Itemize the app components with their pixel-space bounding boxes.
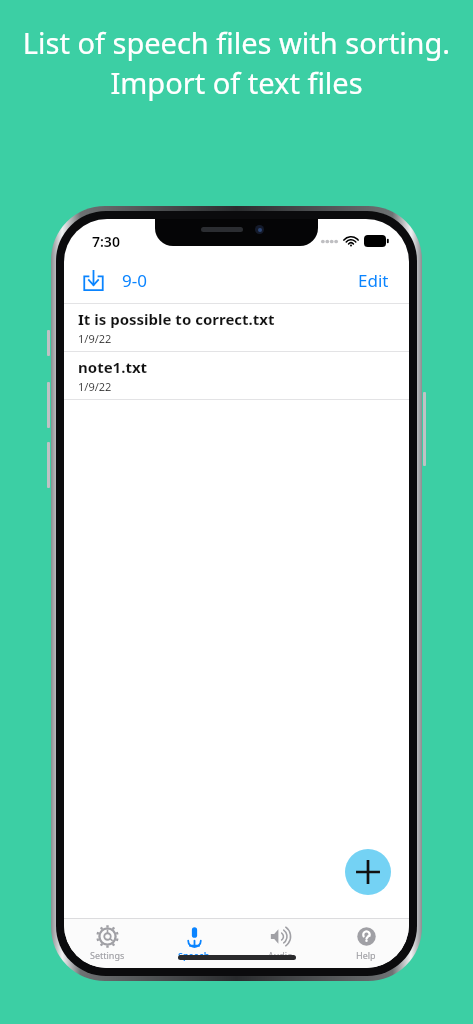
button[interactable]: 9-0 xyxy=(122,269,147,292)
staticText: Settings xyxy=(90,949,125,961)
button[interactable]: Audio xyxy=(237,919,323,968)
staticText: 1/9/22 xyxy=(78,331,112,346)
button[interactable]: Add new recording xyxy=(345,849,391,895)
staticText: List of speech files with sorting. Impor… xyxy=(14,23,459,103)
button[interactable]: Speech xyxy=(151,919,237,968)
staticText: 7:30 xyxy=(92,232,120,251)
button[interactable]: Edit xyxy=(358,269,389,292)
staticText: note1.txt xyxy=(78,357,148,377)
staticText: 9-0 xyxy=(122,269,147,292)
staticText: Speech xyxy=(178,949,210,961)
staticText: It is possible to correct.txt xyxy=(78,309,275,329)
button[interactable]: Settings xyxy=(64,919,151,968)
button[interactable]: It is possible to correct.txt xyxy=(64,304,409,351)
staticText: Help xyxy=(356,949,376,961)
staticText: Edit xyxy=(358,269,389,292)
button[interactable]: note1.txt xyxy=(64,352,409,399)
staticText: Audio xyxy=(268,949,293,961)
button[interactable]: Import text file xyxy=(74,261,112,299)
staticText: 1/9/22 xyxy=(78,379,112,394)
button[interactable]: Help xyxy=(323,919,409,968)
